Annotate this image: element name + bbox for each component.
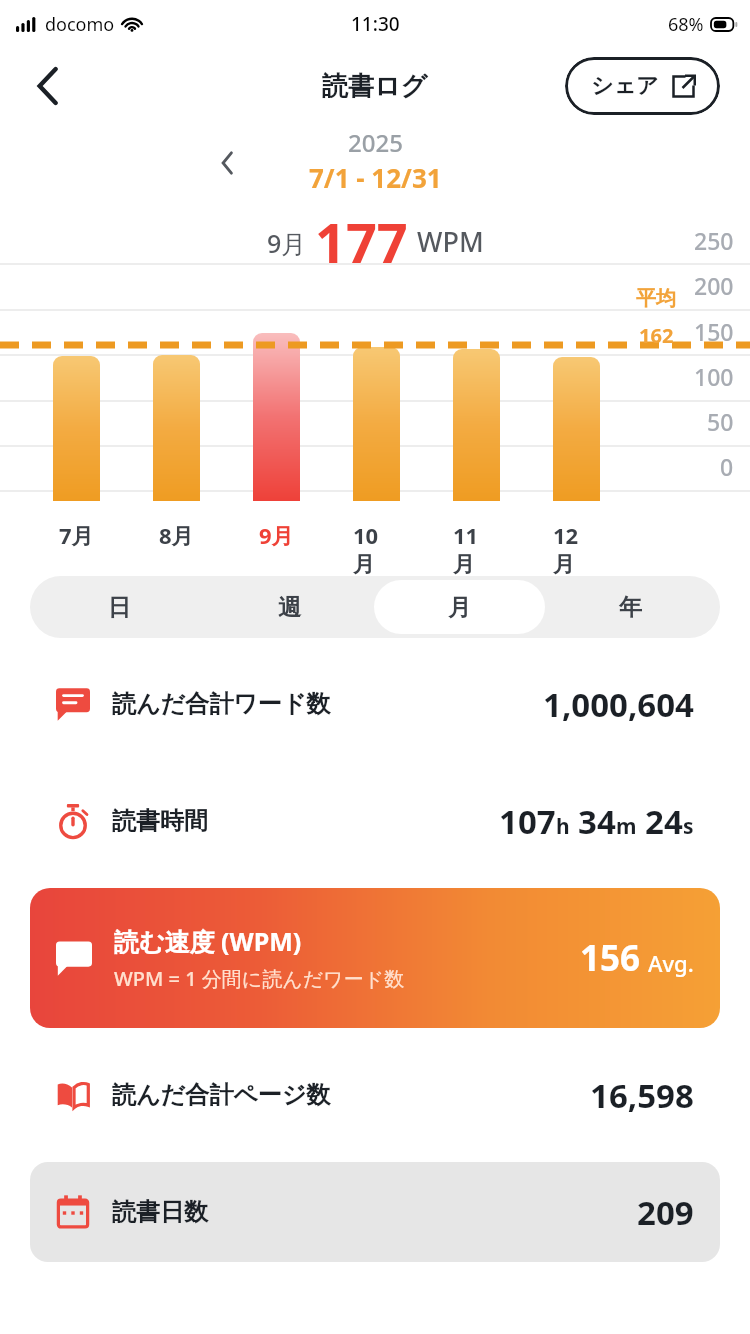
staticText: 12月 [553,520,600,579]
staticText: s [683,812,694,841]
staticText: docomo [45,12,115,37]
staticText: h [556,812,570,841]
staticText: 24 [645,799,683,844]
staticText: 読む速度 (WPM) [114,924,302,958]
staticText: 2025 [348,126,403,159]
button[interactable]: 月 [374,580,545,634]
staticText: 9月 [259,520,294,550]
staticText: 156 [580,934,641,982]
staticText: 年 [619,593,642,622]
staticText: 0 [720,451,734,482]
other: Pages [56,1078,90,1112]
staticText: 50 [707,406,734,437]
other: Days [56,1195,90,1229]
button[interactable]: シェア [565,57,720,115]
staticText: 読書ログ [322,70,428,103]
other: Words [56,940,92,976]
other: Reading time [56,804,90,838]
button[interactable]: 日 [34,580,204,634]
button[interactable]: Pages [30,1045,720,1145]
staticText: 7/1 - 12/31 [309,160,442,195]
staticText: 平均 [636,286,676,311]
staticText: 週 [278,593,301,622]
button[interactable]: Previous period [202,138,252,188]
staticText: 7月 [59,520,94,550]
staticText: 読んだ合計ページ数 [112,1080,331,1110]
staticText: 読書日数 [112,1197,208,1227]
staticText: シェア [591,72,659,100]
button[interactable]: Back [20,58,76,114]
staticText: 162 [639,322,674,349]
button[interactable]: Days [30,1162,720,1262]
staticText: 10月 [353,520,400,579]
staticText: 月 [448,593,471,622]
staticText: 200 [694,270,734,301]
other: Words [56,687,90,721]
staticText: 11:30 [351,11,400,37]
button[interactable]: 週 [204,580,374,634]
button[interactable]: Reading time [30,771,720,871]
staticText: 読んだ合計ワード数 [112,689,331,719]
staticText: 100 [694,361,734,392]
staticText: Avg. [648,948,694,978]
button[interactable]: Words [30,888,720,1028]
staticText: WPM [417,223,484,260]
staticText: 177 [315,205,408,266]
staticText: 107 [499,799,556,844]
staticText: 209 [637,1190,694,1235]
staticText: WPM = 1 分間に読んだワード数 [114,965,405,992]
staticText: 11月 [453,520,500,579]
staticText: 34 [578,799,616,844]
button[interactable]: 年 [545,580,716,634]
staticText: 150 [694,316,734,347]
staticText: 日 [108,593,131,622]
staticText: 1,000,604 [543,682,694,727]
staticText: 9月 [267,226,307,260]
staticText: 読書時間 [112,806,208,836]
staticText: m [616,812,637,841]
staticText: 16,598 [590,1073,694,1118]
button[interactable]: Words [30,654,720,754]
staticText: 250 [694,225,734,256]
staticText: 8月 [159,520,194,550]
staticText: 68% [668,12,704,37]
